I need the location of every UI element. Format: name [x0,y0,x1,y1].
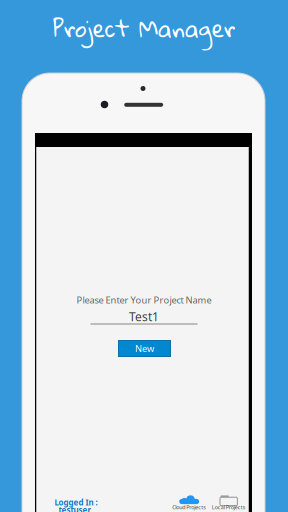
staticText: New [135,342,154,355]
button[interactable]: Cloud Projects [179,494,200,512]
staticText: testuser [58,504,91,512]
staticText: Logged In : [54,497,97,508]
staticText: Test1 [129,308,159,324]
button[interactable]: New [118,340,170,356]
staticText: Project Manager [53,5,235,50]
staticText: Local Projects [212,504,246,511]
button[interactable]: Local Projects [220,494,238,512]
staticText: Please Enter Your Project Name [76,294,211,306]
staticText: Cloud Projects [172,504,206,511]
